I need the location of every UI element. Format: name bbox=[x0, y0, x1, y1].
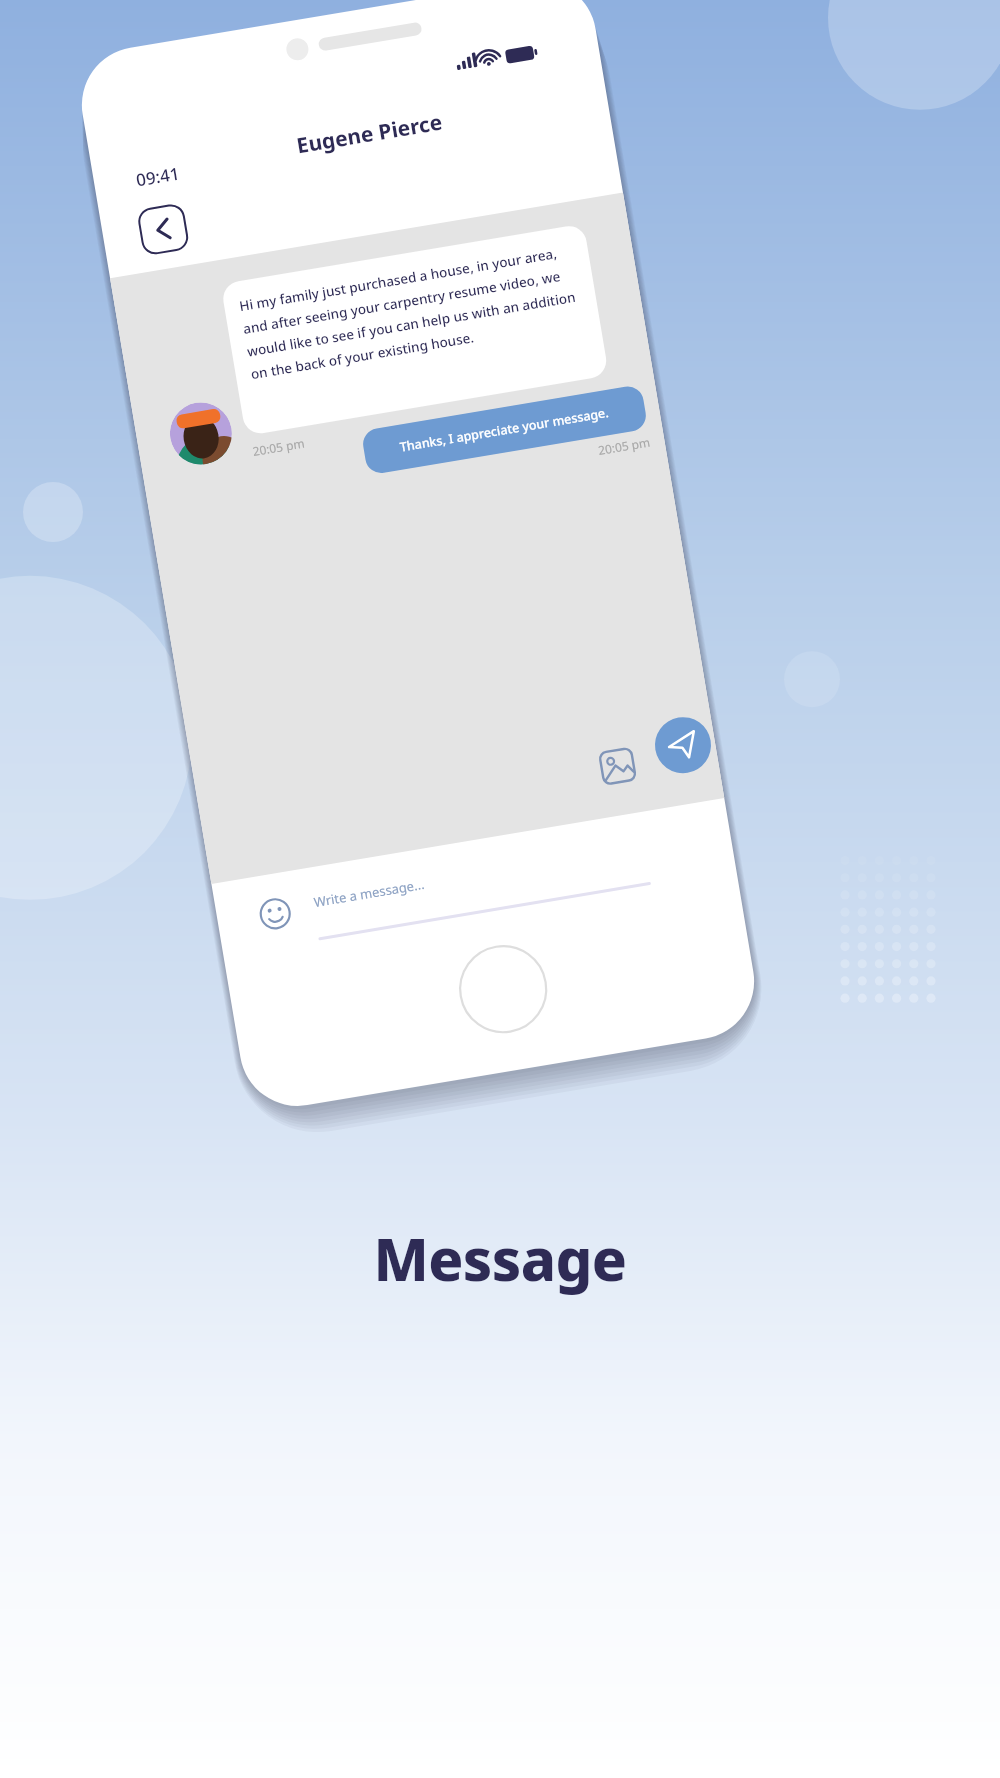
button[interactable]: Back bbox=[118, 164, 178, 232]
button[interactable]: Write a message bbox=[305, 814, 625, 878]
button[interactable]: Home bbox=[452, 900, 552, 1000]
button[interactable]: Attach image bbox=[558, 768, 643, 843]
button[interactable]: Emoji bbox=[253, 829, 298, 882]
button[interactable]: Send message bbox=[637, 757, 717, 842]
